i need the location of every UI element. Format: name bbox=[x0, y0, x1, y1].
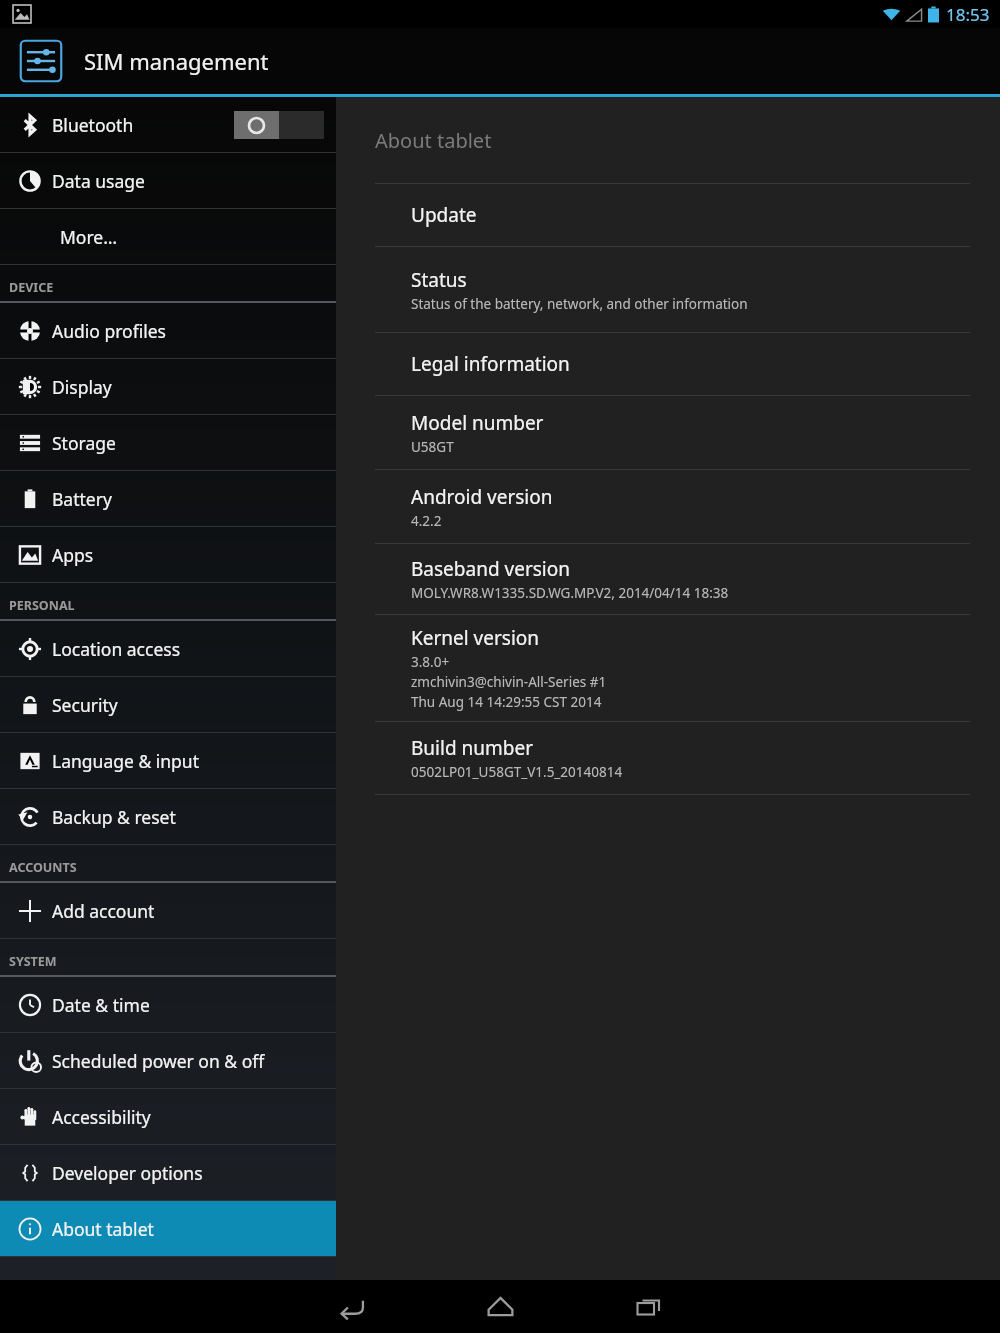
button[interactable]: Location access bbox=[0, 621, 336, 677]
staticText: Language & input bbox=[52, 749, 199, 773]
staticText: Update bbox=[411, 202, 477, 228]
button[interactable]: Back bbox=[302, 1280, 402, 1333]
staticText: zmchivin3@chivin-All-Series #1 bbox=[411, 673, 607, 691]
button[interactable]: Model number bbox=[336, 396, 1000, 470]
button[interactable]: Backup & reset bbox=[0, 789, 336, 845]
button[interactable]: SIM management bbox=[18, 38, 64, 84]
staticText: SYSTEM bbox=[9, 953, 57, 970]
staticText: Accessibility bbox=[52, 1105, 151, 1129]
staticText: DEVICE bbox=[9, 279, 54, 296]
staticText: About tablet bbox=[375, 127, 492, 154]
staticText: 0502LP01_U58GT_V1.5_20140814 bbox=[411, 763, 623, 781]
staticText: PERSONAL bbox=[9, 597, 75, 614]
button[interactable]: Language & input bbox=[0, 733, 336, 789]
staticText: About tablet bbox=[52, 1217, 154, 1241]
button[interactable]: Storage bbox=[0, 415, 336, 471]
button[interactable]: Recent apps bbox=[598, 1280, 698, 1333]
staticText: Status bbox=[411, 267, 467, 293]
staticText: 3.8.0+ bbox=[411, 653, 450, 671]
staticText: Backup & reset bbox=[52, 805, 176, 829]
button[interactable]: Update bbox=[336, 184, 1000, 247]
staticText: Data usage bbox=[52, 169, 145, 193]
staticText: SIM management bbox=[84, 46, 269, 76]
button[interactable]: Display bbox=[0, 359, 336, 415]
staticText: Battery bbox=[52, 487, 112, 511]
button[interactable]: Home bbox=[450, 1280, 550, 1333]
button[interactable]: Apps bbox=[0, 527, 336, 583]
button[interactable]: Add account bbox=[0, 883, 336, 939]
staticText: Security bbox=[52, 693, 118, 717]
staticText: Model number bbox=[411, 410, 544, 436]
staticText: Location access bbox=[52, 637, 181, 661]
staticText: Audio profiles bbox=[52, 319, 166, 343]
staticText: ACCOUNTS bbox=[9, 859, 77, 876]
button[interactable]: Data usage bbox=[0, 153, 336, 209]
button[interactable]: Scheduled power on & off bbox=[0, 1033, 336, 1089]
button[interactable]: Android version bbox=[336, 470, 1000, 544]
button[interactable]: Date & time bbox=[0, 977, 336, 1033]
staticText: Status of the battery, network, and othe… bbox=[411, 295, 748, 313]
button[interactable]: About tablet bbox=[0, 1201, 336, 1257]
staticText: U58GT bbox=[411, 438, 454, 456]
staticText: Add account bbox=[52, 899, 155, 923]
button[interactable]: Status bbox=[336, 247, 1000, 333]
staticText: Apps bbox=[52, 543, 94, 567]
staticText: Baseband version bbox=[411, 556, 570, 582]
staticText: 18:53 bbox=[946, 3, 990, 26]
staticText: Legal information bbox=[411, 351, 570, 377]
button[interactable]: Audio profiles bbox=[0, 303, 336, 359]
button[interactable]: Security bbox=[0, 677, 336, 733]
staticText: 4.2.2 bbox=[411, 512, 442, 530]
staticText: Bluetooth bbox=[52, 113, 134, 137]
staticText: Thu Aug 14 14:29:55 CST 2014 bbox=[411, 693, 602, 711]
staticText: Kernel version bbox=[411, 625, 540, 651]
button[interactable]: Accessibility bbox=[0, 1089, 336, 1145]
button[interactable]: Developer options bbox=[0, 1145, 336, 1201]
staticText: MOLY.WR8.W1335.SD.WG.MP.V2, 2014/04/14 1… bbox=[411, 584, 729, 602]
staticText: Android version bbox=[411, 484, 553, 510]
button[interactable]: More… bbox=[0, 209, 336, 265]
staticText: Date & time bbox=[52, 993, 150, 1017]
button[interactable]: Legal information bbox=[336, 333, 1000, 396]
staticText: More… bbox=[60, 225, 118, 249]
button[interactable]: Baseband version bbox=[336, 544, 1000, 615]
staticText: Developer options bbox=[52, 1161, 203, 1185]
button[interactable]: Battery bbox=[0, 471, 336, 527]
staticText: Storage bbox=[52, 431, 116, 455]
staticText: Display bbox=[52, 375, 112, 399]
staticText: Scheduled power on & off bbox=[52, 1049, 265, 1073]
staticText: Build number bbox=[411, 735, 534, 761]
button[interactable]: Build number bbox=[336, 722, 1000, 795]
button[interactable]: Bluetooth bbox=[0, 97, 336, 153]
button[interactable]: Kernel version bbox=[336, 615, 1000, 722]
